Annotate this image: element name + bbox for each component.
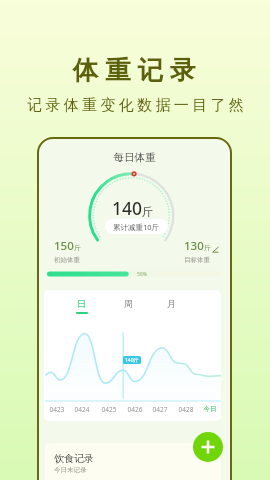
button[interactable]: 编辑目标体重 <box>212 246 219 253</box>
staticText: 每日体重 <box>37 151 232 164</box>
staticText: 140斤 <box>125 357 139 364</box>
staticText: 月 <box>165 298 178 309</box>
staticText: 斤 <box>142 205 154 219</box>
staticText: 今日未记录 <box>54 466 87 474</box>
staticText: 0423 <box>46 405 68 414</box>
staticText: 0426 <box>124 405 146 414</box>
button[interactable]: 添加记录 <box>193 432 223 462</box>
staticText: 记录体重变化数据一目了然 <box>27 96 248 115</box>
staticText: 0424 <box>71 405 93 414</box>
staticText: 斤 <box>204 244 211 252</box>
staticText: 目标体重 <box>184 256 210 264</box>
staticText: 50% <box>137 271 147 277</box>
staticText: 0427 <box>149 405 171 414</box>
staticText: 今日 <box>199 405 221 413</box>
staticText: 日 <box>75 298 88 309</box>
button[interactable]: 日 <box>75 298 88 314</box>
staticText: 0425 <box>98 405 120 414</box>
staticText: 140 <box>112 196 143 220</box>
staticText: 初始体重 <box>54 256 80 264</box>
staticText: 累计减重10斤 <box>113 222 160 232</box>
staticText: 体重记录 <box>69 54 199 86</box>
button[interactable]: 周 <box>122 298 135 312</box>
staticText: 斤 <box>74 244 81 252</box>
staticText: 150 <box>54 238 74 254</box>
staticText: 周 <box>122 298 135 309</box>
staticText: 130 <box>184 238 204 254</box>
button[interactable]: 月 <box>165 298 178 312</box>
staticText: 0428 <box>175 405 197 414</box>
button[interactable]: 饮食记录 <box>45 443 221 480</box>
staticText: 饮食记录 <box>54 452 94 465</box>
